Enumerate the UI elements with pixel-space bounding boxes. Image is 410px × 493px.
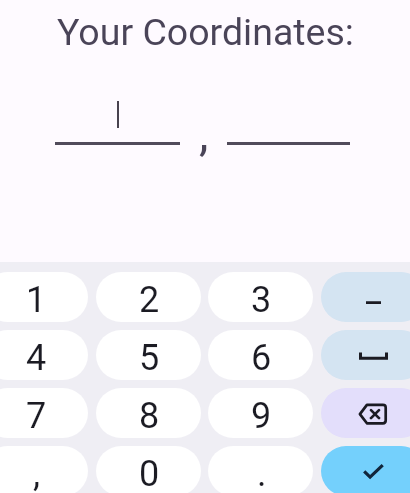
button[interactable]: Longitude <box>227 98 350 145</box>
button[interactable]: 9 <box>208 388 313 438</box>
staticText: 6 <box>251 337 272 379</box>
button[interactable]: , <box>0 446 88 493</box>
staticText: 9 <box>251 395 272 437</box>
staticText: 0 <box>139 453 160 493</box>
staticText: 1 <box>26 279 47 321</box>
button[interactable]: 4 <box>0 330 88 380</box>
staticText: , <box>199 105 209 161</box>
staticText: 2 <box>139 279 160 321</box>
button[interactable]: 0 <box>96 446 201 493</box>
staticText: Your Coordinates: <box>57 10 354 54</box>
button[interactable]: . <box>208 446 313 493</box>
button[interactable]: 2 <box>96 272 201 322</box>
button[interactable]: 1 <box>0 272 88 322</box>
staticText: . <box>257 453 267 493</box>
button[interactable]: Done <box>321 446 410 493</box>
button[interactable]: 5 <box>96 330 201 380</box>
button[interactable]: 6 <box>208 330 313 380</box>
staticText: 3 <box>251 279 272 321</box>
staticText: , <box>33 453 41 493</box>
staticText: 8 <box>139 395 160 437</box>
staticText: 5 <box>139 337 160 379</box>
button[interactable]: 7 <box>0 388 88 438</box>
staticText: 4 <box>26 337 47 379</box>
button[interactable]: 3 <box>208 272 313 322</box>
button[interactable]: Backspace <box>321 388 410 438</box>
staticText: 7 <box>26 395 47 437</box>
button[interactable]: Latitude <box>55 98 180 145</box>
button[interactable]: Minus <box>321 272 410 322</box>
button[interactable]: 8 <box>96 388 201 438</box>
button[interactable]: Space <box>321 330 410 380</box>
